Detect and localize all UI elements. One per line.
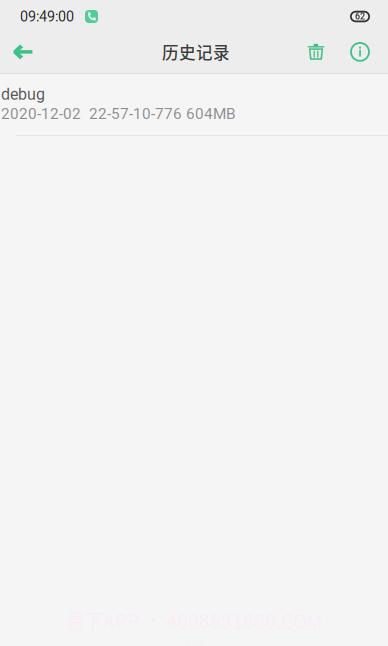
button[interactable]: Info <box>341 31 379 72</box>
staticText: debug <box>1 85 45 104</box>
staticText: 09:49:00 <box>20 8 74 25</box>
staticText: 62 <box>355 11 365 22</box>
button[interactable]: Delete <box>294 31 338 72</box>
button[interactable]: debug <box>0 74 388 136</box>
staticText: 历史记录 <box>162 40 230 64</box>
staticText: 2020-12-02 22-57-10-776 604MB <box>1 105 236 123</box>
button[interactable]: Back <box>0 31 46 72</box>
